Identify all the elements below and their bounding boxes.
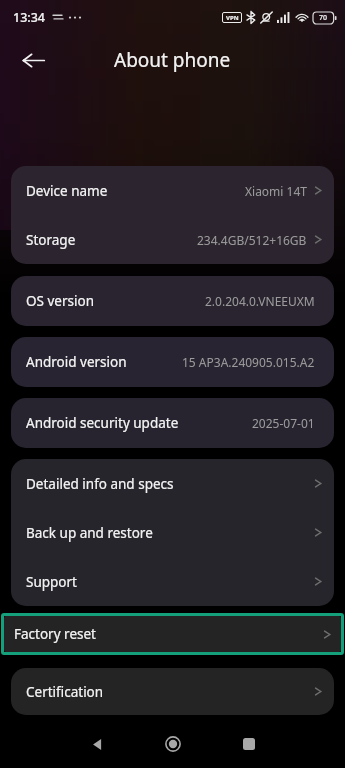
staticText: 234.4GB/512+16GB: [197, 232, 307, 248]
staticText: Factory reset: [14, 625, 96, 643]
button[interactable]: Storage: [11, 215, 334, 264]
staticText: Detailed info and specs: [26, 475, 174, 493]
staticText: OS version: [26, 292, 94, 310]
button[interactable]: Back: [73, 720, 121, 768]
staticText: 15 AP3A.240905.015.A2: [182, 354, 315, 370]
staticText: 13:34: [13, 9, 46, 26]
button[interactable]: Device name: [11, 166, 334, 215]
button[interactable]: Home: [149, 720, 197, 768]
staticText: Storage: [26, 231, 76, 249]
button[interactable]: Android version: [11, 337, 334, 387]
staticText: Xiaomi 14T: [245, 183, 307, 199]
button[interactable]: Factory reset: [4, 616, 341, 652]
staticText: Certification: [26, 683, 104, 701]
staticText: About phone: [114, 47, 231, 73]
button[interactable]: Support: [11, 557, 334, 606]
staticText: 2.0.204.0.VNEEUXM: [205, 293, 315, 309]
staticText: Support: [26, 573, 77, 591]
staticText: Android security update: [26, 414, 179, 432]
button[interactable]: Certification: [11, 668, 334, 715]
button[interactable]: OS version: [11, 276, 334, 326]
staticText: VPN: [226, 14, 239, 22]
button[interactable]: Android security update: [11, 398, 334, 448]
staticText: 70: [319, 13, 328, 23]
staticText: Android version: [26, 353, 127, 371]
staticText: 2025-07-01: [252, 415, 315, 431]
staticText: Device name: [26, 182, 108, 200]
button[interactable]: Back: [11, 38, 55, 82]
button[interactable]: Detailed info and specs: [11, 459, 334, 508]
button[interactable]: Back up and restore: [11, 508, 334, 557]
button[interactable]: Recents: [225, 720, 273, 768]
staticText: Back up and restore: [26, 524, 153, 542]
